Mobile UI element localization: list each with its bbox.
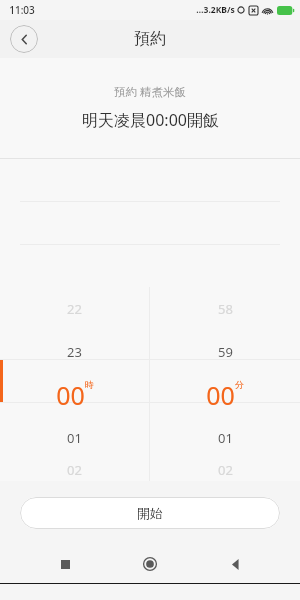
- staticText: 02: [67, 461, 82, 479]
- button[interactable]: 00: [150, 373, 300, 416]
- staticText: 59: [218, 343, 233, 361]
- staticText: 開始: [137, 505, 163, 521]
- staticText: 時: [85, 379, 94, 390]
- staticText: 02: [218, 461, 233, 479]
- button[interactable]: 01: [0, 416, 149, 459]
- button[interactable]: Back: [215, 544, 255, 584]
- staticText: 11:03: [9, 3, 35, 17]
- button[interactable]: 01: [150, 416, 300, 459]
- button[interactable]: 02: [150, 459, 300, 481]
- staticText: 01: [67, 429, 82, 447]
- staticText: 58: [218, 300, 233, 318]
- staticText: …3.2KB/s: [196, 4, 235, 16]
- button[interactable]: Home: [130, 544, 170, 584]
- button[interactable]: Recent apps: [45, 544, 85, 584]
- button[interactable]: 02: [0, 459, 149, 481]
- staticText: 00: [56, 378, 85, 412]
- staticText: 22: [67, 300, 82, 318]
- button[interactable]: Back: [10, 25, 38, 53]
- staticText: 分: [235, 379, 244, 390]
- staticText: 預約: [134, 29, 166, 49]
- staticText: 00: [206, 378, 235, 412]
- button[interactable]: 23: [0, 330, 149, 373]
- button[interactable]: 00: [0, 373, 149, 416]
- staticText: 明天凌晨00:00開飯: [82, 109, 219, 131]
- staticText: 01: [218, 429, 233, 447]
- button[interactable]: 開始: [20, 497, 280, 529]
- button[interactable]: 59: [150, 330, 300, 373]
- staticText: 預約 精煮米飯: [114, 84, 186, 100]
- staticText: 23: [67, 343, 82, 361]
